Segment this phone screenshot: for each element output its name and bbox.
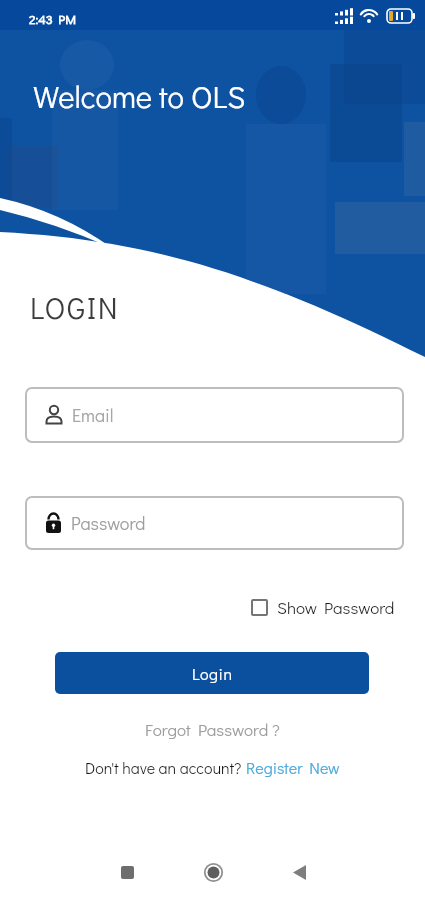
button[interactable]: Email bbox=[25, 387, 404, 443]
staticText: Don't have an account? bbox=[85, 757, 246, 778]
button[interactable]: Login bbox=[55, 652, 369, 694]
staticText: Welcome to OLS bbox=[33, 76, 246, 117]
staticText: Show Password bbox=[277, 596, 395, 618]
button[interactable]: Forgot Password ? bbox=[139, 716, 286, 742]
button[interactable]: Register New bbox=[246, 757, 340, 778]
staticText: Email bbox=[72, 403, 114, 427]
button[interactable] bbox=[99, 844, 155, 900]
staticText: Login bbox=[192, 663, 233, 684]
button[interactable] bbox=[185, 844, 241, 900]
button[interactable]: Password bbox=[25, 496, 404, 550]
button[interactable]: Show Password bbox=[247, 592, 399, 622]
button[interactable] bbox=[271, 844, 327, 900]
staticText: 2:43 PM bbox=[29, 10, 76, 27]
staticText: LOGIN bbox=[30, 288, 120, 327]
staticText: Password bbox=[71, 511, 146, 535]
